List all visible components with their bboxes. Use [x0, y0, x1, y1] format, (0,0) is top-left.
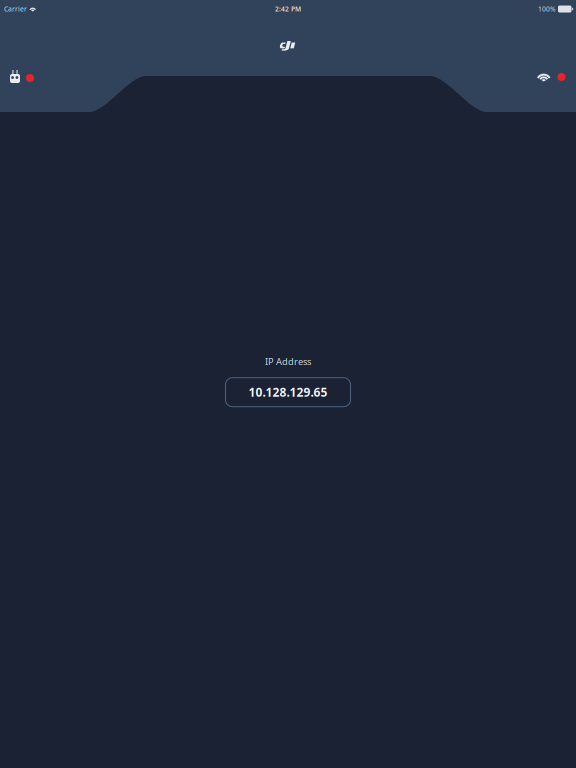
button[interactable]: Remote controller connected [6, 66, 38, 87]
staticText: 10.128.129.65 [248, 384, 327, 400]
staticText: Carrier [4, 5, 27, 13]
button[interactable]: Wi-Fi connected, recording [533, 68, 569, 85]
staticText: 100% [538, 5, 556, 13]
staticText: IP Address [265, 355, 311, 368]
button[interactable]: 10.128.129.65 [225, 378, 350, 407]
staticText: 2:42 PM [275, 5, 301, 13]
